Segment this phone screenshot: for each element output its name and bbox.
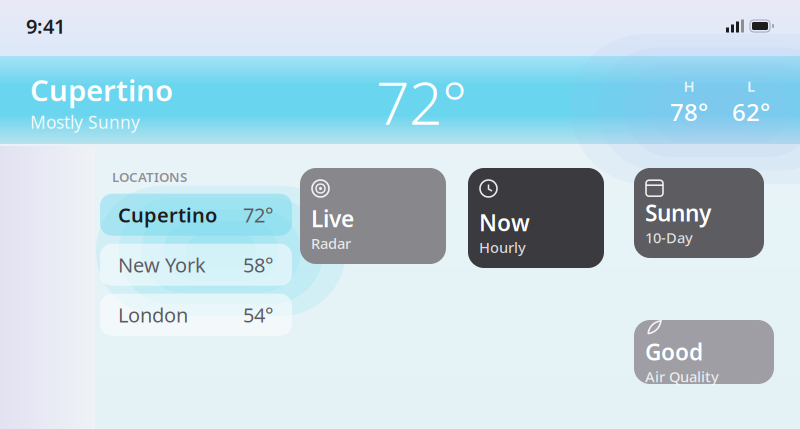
- staticText: 78°: [670, 96, 708, 128]
- staticText: Now: [479, 207, 530, 237]
- staticText: Air Quality: [645, 367, 719, 386]
- staticText: H: [683, 76, 694, 96]
- button[interactable]: New York: [0, 244, 300, 286]
- button[interactable]: Cupertino: [0, 52, 800, 152]
- button[interactable]: Cupertino: [0, 194, 300, 236]
- button[interactable]: Live: [300, 168, 446, 264]
- button[interactable]: Sunny: [634, 168, 764, 258]
- staticText: 58°: [243, 251, 274, 278]
- staticText: 10-Day: [645, 228, 693, 247]
- staticText: Cupertino: [30, 70, 173, 109]
- staticText: London: [118, 301, 188, 328]
- button[interactable]: Now: [468, 168, 604, 268]
- staticText: 62°: [732, 96, 770, 128]
- staticText: 72°: [243, 201, 274, 228]
- staticText: Good: [645, 337, 703, 367]
- button[interactable]: Good: [634, 320, 774, 384]
- staticText: 54°: [243, 301, 274, 328]
- staticText: 72°: [376, 63, 467, 141]
- staticText: LOCATIONS: [112, 168, 187, 186]
- staticText: New York: [118, 251, 206, 278]
- staticText: L: [747, 76, 755, 96]
- staticText: Sunny: [645, 198, 711, 228]
- button[interactable]: London: [0, 294, 300, 336]
- staticText: Hourly: [479, 237, 526, 257]
- staticText: 9:41: [26, 13, 65, 39]
- staticText: Radar: [311, 233, 351, 253]
- staticText: Mostly Sunny: [30, 110, 140, 133]
- staticText: Live: [311, 203, 354, 233]
- staticText: Cupertino: [118, 201, 217, 228]
